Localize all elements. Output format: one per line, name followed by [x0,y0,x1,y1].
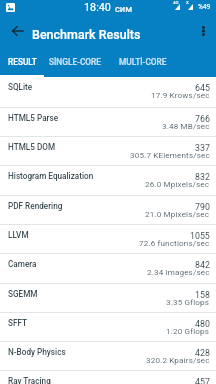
staticText: сим [115,3,133,14]
staticText: SFFT [8,318,28,328]
button[interactable]: SGEMM [0,284,216,312]
staticText: 480 [195,319,210,329]
staticText: 766 [195,114,210,124]
staticText: MULTİ-CORE [119,57,167,67]
staticText: 158 [195,290,210,300]
staticText: 18:40 [84,1,111,14]
staticText: 1.20 Gflops [166,326,210,335]
button[interactable]: RESULT [0,48,44,77]
button[interactable]: SQLite [0,77,216,107]
button[interactable]: HTML5 Parse [0,108,216,136]
staticText: RESULT [8,57,37,67]
staticText: %49 [198,3,211,11]
staticText: 4G [173,0,179,5]
staticText: 337 [195,143,210,153]
staticText: 26.0 Mpixels/sec [145,179,210,188]
staticText: SQLite [8,82,33,92]
staticText: 72.6 functions/sec [139,238,210,247]
staticText: 457 [195,377,210,384]
button[interactable]: More options [190,18,216,44]
staticText: X [186,0,189,5]
staticText: Ray Tracing [8,376,51,384]
staticText: SİNGLE-CORE [49,57,101,67]
button[interactable]: Ray Tracing [0,371,216,384]
button[interactable]: PDF Rendering [0,196,216,224]
button[interactable]: SFFT [0,313,216,341]
staticText: SGEMM [8,289,38,299]
button[interactable]: N-Body Physics [0,342,216,370]
staticText: N-Body Physics [8,347,66,357]
staticText: 17.9 Krows/sec [151,90,210,99]
button[interactable]: SİNGLE-CORE [44,48,106,77]
button[interactable]: Back [0,14,34,48]
staticText: 21.0 Mpixels/sec [145,209,210,218]
staticText: 790 [195,202,210,212]
staticText: Benchmark Results [32,27,141,42]
staticText: 2.34 images/sec [147,267,210,276]
staticText: 428 [195,348,210,358]
staticText: Histogram Equalization [8,171,94,181]
staticText: HTML5 Parse [8,113,59,123]
staticText: LLVM [8,230,29,240]
staticText: 1055 [190,231,210,241]
button[interactable]: Histogram Equalization [0,166,216,195]
button[interactable]: LLVM [0,225,216,253]
staticText: 320.2 Kpairs/sec [146,355,210,364]
staticText: 3.48 MB/sec [162,121,210,130]
staticText: 832 [195,172,210,182]
button[interactable]: HTML5 DOM [0,137,216,165]
button[interactable]: Camera [0,254,216,283]
staticText: PDF Rendering [8,201,63,211]
staticText: HTML5 DOM [8,142,56,152]
staticText: Camera [8,259,37,269]
staticText: 305.7 KElements/sec [130,150,210,159]
staticText: 3.35 Gflops [166,297,210,306]
button[interactable]: MULTİ-CORE [106,48,179,77]
staticText: 842 [195,260,210,270]
staticText: 645 [195,83,210,93]
